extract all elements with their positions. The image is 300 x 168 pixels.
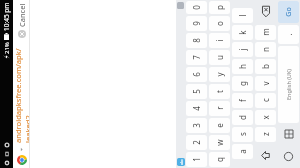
staticText: s [237,132,248,136]
staticText: q [214,157,225,162]
staticText: 6 [191,72,202,77]
staticText: 4 [191,106,202,111]
button[interactable]: s [232,127,253,142]
staticText: Go [284,7,294,17]
button[interactable]: 7 [186,50,207,65]
button[interactable]: x [255,110,276,125]
button[interactable]: m [255,25,276,40]
staticText: p [214,5,225,10]
staticText: c [260,98,271,102]
staticText: Cancel [17,3,27,27]
button[interactable]: Shift [254,143,277,168]
button[interactable]: 6 [186,67,207,82]
button[interactable]: a [232,144,253,159]
button[interactable]: u [209,50,230,65]
button[interactable]: v [255,76,276,91]
button[interactable]: t [209,84,230,99]
staticText: 7 [191,55,202,60]
button[interactable]: 8 [186,33,207,48]
staticText: y [214,72,225,77]
staticText: z [260,132,271,136]
staticText: 8 [191,38,202,43]
button[interactable]: l [232,8,253,23]
button[interactable]: o [209,16,230,31]
staticText: f [237,99,248,102]
staticText: u [214,55,225,60]
button[interactable]: 1 [186,152,207,167]
button[interactable]: j [232,42,253,57]
staticText: h [237,64,248,69]
button[interactable]: Cancel [13,3,30,27]
staticText: x [260,115,271,120]
staticText: k [237,30,248,35]
staticText: m [260,28,271,36]
staticText: 10:45 pm [2,2,11,31]
staticText: 0 [191,5,202,10]
button[interactable]: 9 [186,16,207,31]
button[interactable]: e [209,118,230,133]
staticText: 3 [191,123,202,128]
staticText: a [237,149,248,154]
button[interactable]: d [232,110,253,125]
button[interactable]: y [209,67,230,82]
staticText: . [283,33,294,36]
button[interactable]: Space [278,46,299,123]
button[interactable]: r [209,101,230,116]
button[interactable]: Symbols [277,145,300,168]
staticText: n [260,47,271,52]
staticText: d [237,115,248,120]
staticText: 5 [191,89,202,94]
button[interactable]: Emoji [277,124,300,145]
staticText: 21% [3,42,11,54]
button[interactable]: b [255,59,276,74]
staticText: o [214,21,225,26]
button[interactable]: 3 [186,118,207,133]
staticText: e [214,123,225,128]
staticText: i [214,39,225,42]
staticText: b [260,64,271,69]
button[interactable]: Keyboard settings [177,2,184,9]
button[interactable]: z [255,127,276,142]
button[interactable]: p [209,1,230,14]
button[interactable]: Switch keyboard [177,158,185,166]
button[interactable]: Clear [16,28,28,40]
button[interactable]: g [232,76,253,91]
button[interactable]: c [255,93,276,108]
staticText: j [237,48,248,51]
button[interactable]: 4 [186,101,207,116]
button[interactable]: w [209,135,230,150]
staticText: 9 [191,21,202,26]
button[interactable]: 0 [186,1,207,14]
staticText: w [214,139,225,146]
staticText: v [260,81,271,86]
staticText: g [237,81,248,86]
button[interactable]: q [209,152,230,167]
staticText: androidapksfree.com/apk/leaked2 [13,40,30,143]
staticText: abc [179,159,184,165]
button[interactable]: n [255,42,276,57]
button[interactable]: Chrome [16,154,28,166]
button[interactable]: 2 [186,135,207,150]
staticText: r [214,106,225,110]
button[interactable]: k [232,25,253,40]
button[interactable]: Go [278,1,299,23]
button[interactable]: i [209,33,230,48]
button[interactable]: Backspace [254,0,277,24]
button[interactable]: h [232,59,253,74]
staticText: l [237,14,248,17]
staticText: 2 [191,140,202,145]
button[interactable]: f [232,93,253,108]
staticText: t [214,90,225,93]
staticText: 1 [191,157,202,162]
button[interactable]: . [278,25,299,44]
staticText: English (UK) [285,69,292,100]
button[interactable]: 5 [186,84,207,99]
